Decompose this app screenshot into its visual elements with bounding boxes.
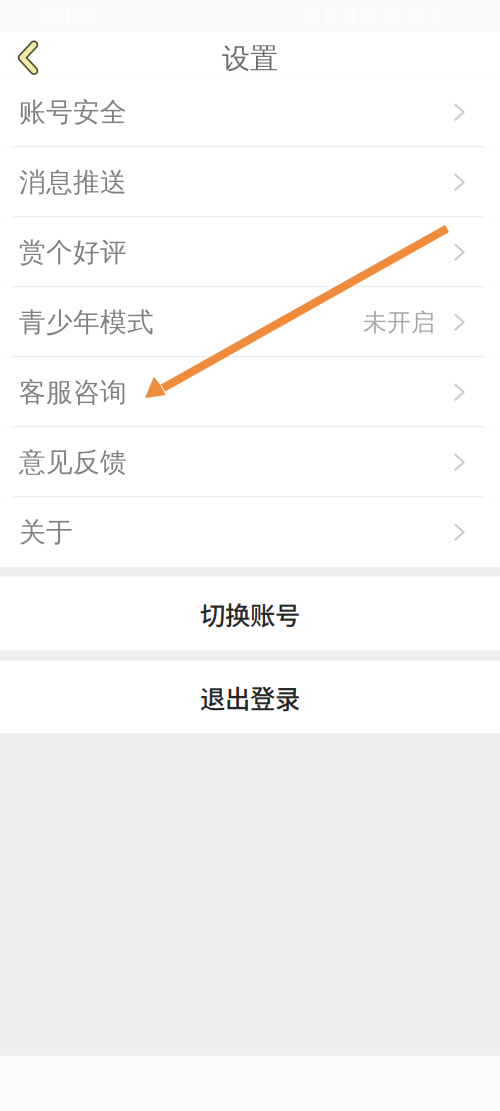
staticText: 未开启	[363, 308, 435, 337]
staticText: 设置	[222, 41, 278, 76]
staticText: 退出登录	[200, 679, 300, 715]
staticText: 青少年模式	[19, 306, 154, 339]
button[interactable]: 青少年模式	[0, 287, 500, 357]
button[interactable]: 意见反馈	[0, 427, 500, 497]
staticText: 意见反馈	[19, 446, 127, 479]
button[interactable]: 客服咨询	[0, 357, 500, 427]
button[interactable]: 赏个好评	[0, 217, 500, 287]
staticText: 切换账号	[200, 595, 300, 632]
button[interactable]: Back	[0, 32, 56, 77]
staticText: 消息推送	[19, 166, 127, 199]
staticText: 账号安全	[19, 96, 127, 129]
staticText: 客服咨询	[19, 376, 127, 409]
button[interactable]: 关于	[0, 497, 500, 567]
staticText: 赏个好评	[19, 236, 127, 269]
button[interactable]: 退出登录	[0, 661, 500, 734]
button[interactable]: 消息推送	[0, 147, 500, 217]
button[interactable]: 账号安全	[0, 77, 500, 147]
button[interactable]: 切换账号	[0, 577, 500, 651]
staticText: 关于	[19, 516, 73, 549]
